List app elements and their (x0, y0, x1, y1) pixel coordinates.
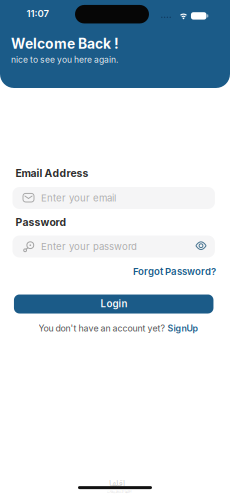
staticText: Forgot Password? (133, 266, 216, 277)
staticText: Login (100, 298, 127, 310)
staticText: 11:07 (26, 8, 49, 19)
staticText: You don't have an account yet? (38, 323, 164, 333)
staticText: Enter your password (41, 241, 137, 252)
staticText: nice to see you here again. (11, 54, 118, 65)
staticText: Enter your email (41, 192, 116, 204)
staticText: Password (15, 216, 66, 229)
staticText: اقلها للتطبيقات (106, 487, 131, 496)
staticText: SignUp (167, 323, 197, 333)
staticText: اقلها (108, 474, 124, 492)
staticText: Welcome Back ! (11, 35, 119, 52)
staticText: Email Address (15, 167, 88, 180)
